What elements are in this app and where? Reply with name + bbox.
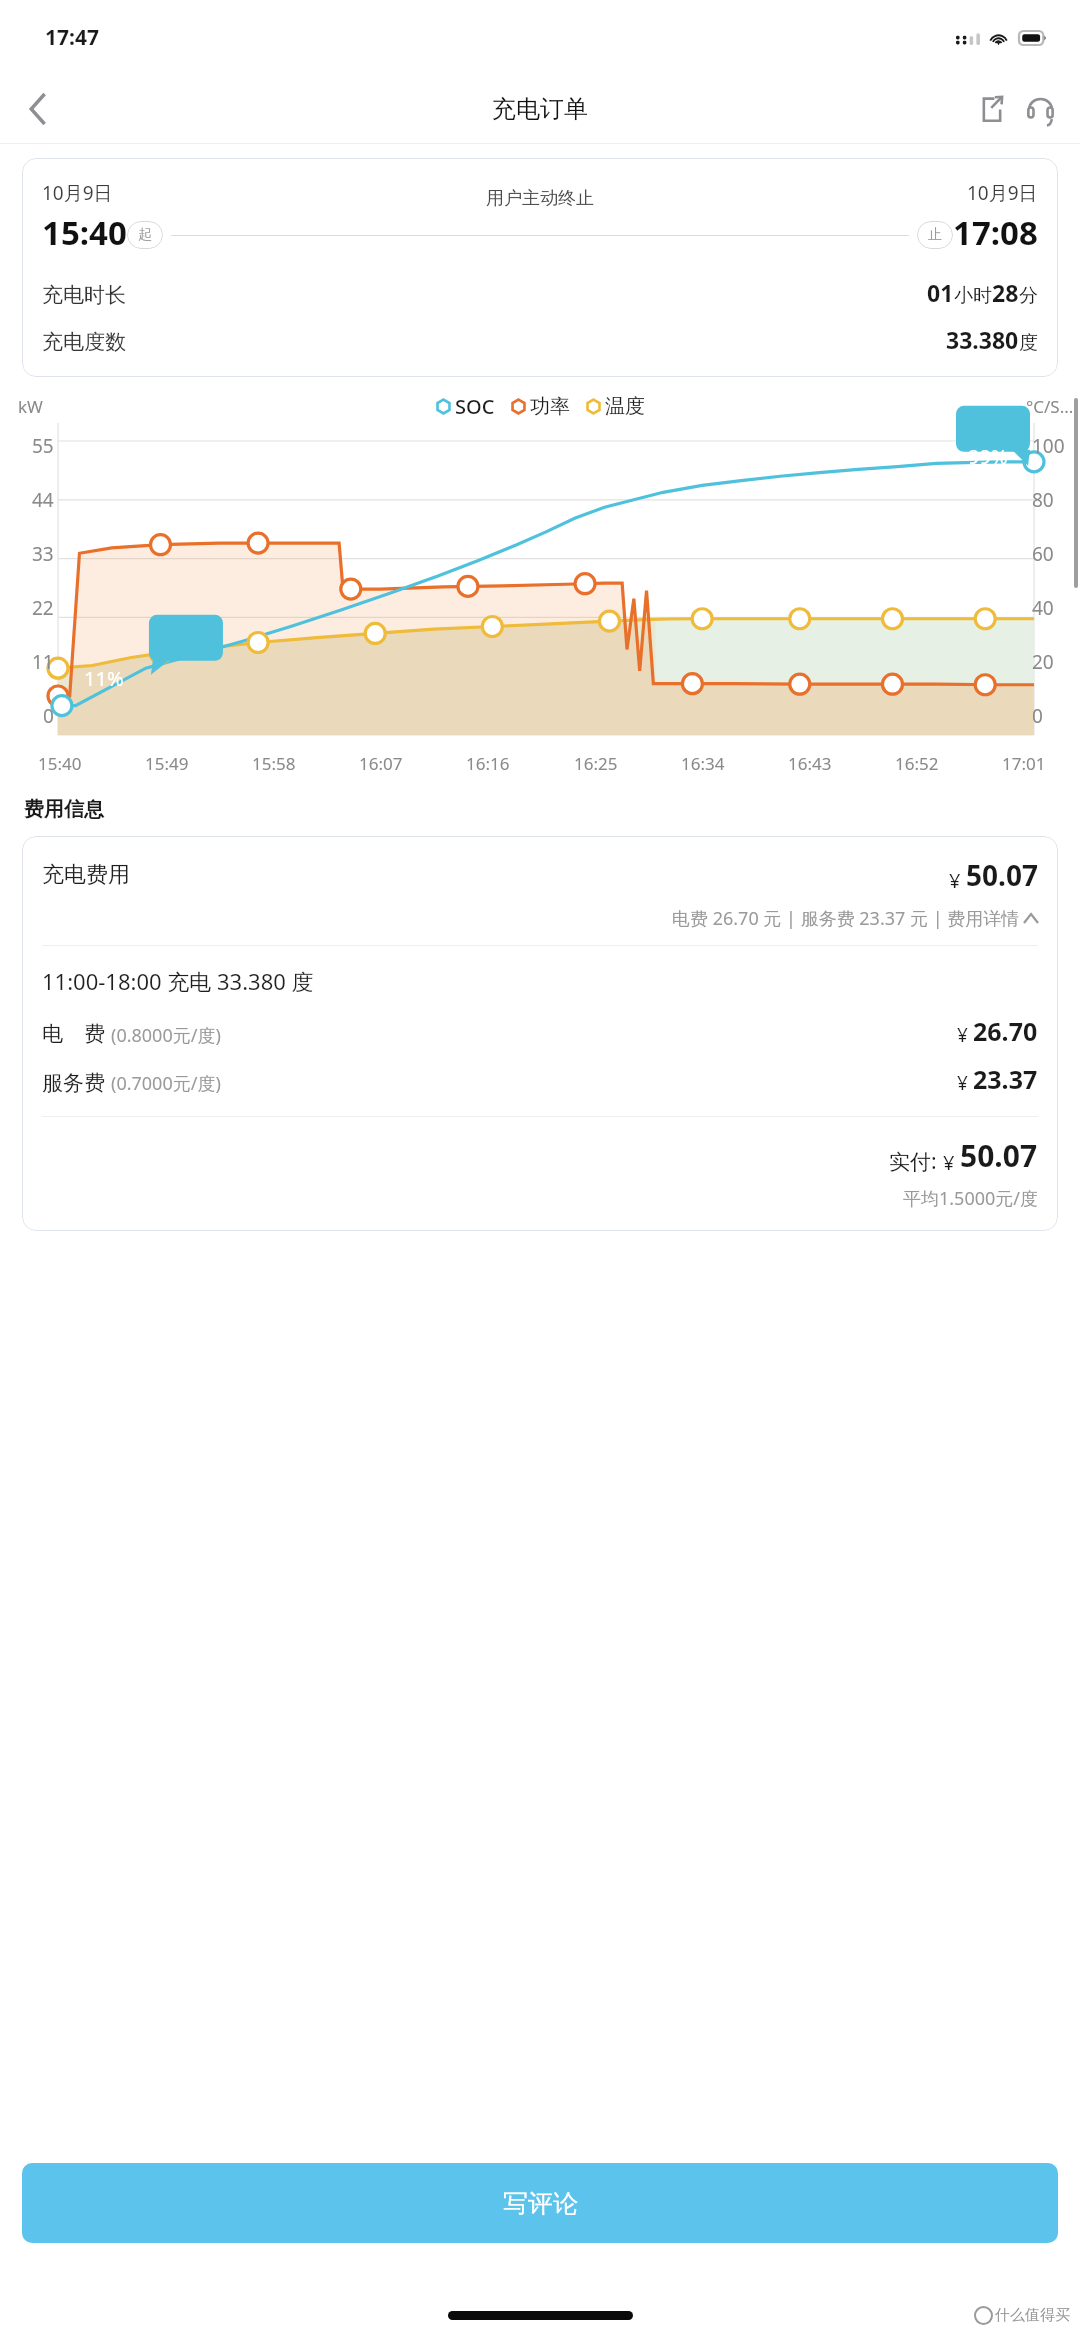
staticText: 功率 bbox=[530, 394, 570, 419]
staticText: (0.8000元/度) bbox=[111, 1023, 221, 1048]
staticText: 费用信息 bbox=[24, 797, 104, 822]
staticText: 16:52 bbox=[895, 752, 939, 775]
staticText: 17:47 bbox=[45, 23, 99, 52]
staticText: 10月9日 bbox=[967, 180, 1038, 206]
staticText: 0 bbox=[1032, 703, 1043, 729]
staticText: 16:25 bbox=[574, 752, 618, 775]
staticText: 服务费 bbox=[42, 1070, 105, 1096]
staticText: °C/S... bbox=[1026, 395, 1074, 418]
staticText: 什么值得买 bbox=[995, 2306, 1070, 2325]
staticText: 电费 26.70 元 | 服务费 23.37 元 | 费用详情 bbox=[672, 906, 1024, 931]
staticText: 11 bbox=[32, 649, 54, 675]
staticText: 充电费用 bbox=[42, 861, 130, 889]
staticText: ¥ bbox=[949, 867, 966, 894]
staticText: SOC bbox=[455, 393, 495, 420]
staticText: 22 bbox=[32, 595, 54, 621]
staticText: 01 bbox=[927, 277, 954, 308]
staticText: 充电度数 bbox=[42, 329, 126, 355]
staticText: 40 bbox=[1032, 595, 1054, 621]
staticText: (0.7000元/度) bbox=[111, 1071, 221, 1096]
staticText: 26.70 bbox=[973, 1014, 1038, 1048]
staticText: 16:34 bbox=[681, 752, 725, 775]
staticText: 11:00-18:00 充电 33.380 度 bbox=[42, 966, 314, 996]
staticText: 电 费 bbox=[42, 1019, 105, 1048]
staticText: 度 bbox=[1019, 331, 1038, 355]
staticText: 60 bbox=[1032, 541, 1054, 567]
button[interactable]: 10月9日 bbox=[22, 158, 1058, 377]
staticText: 50.07 bbox=[966, 856, 1038, 894]
staticText: 16:43 bbox=[788, 752, 832, 775]
staticText: 用户主动终止 bbox=[486, 187, 594, 210]
button[interactable]: 返回 bbox=[10, 81, 66, 137]
staticText: 充电时长 bbox=[42, 282, 126, 308]
staticText: 实付: bbox=[889, 1147, 943, 1176]
staticText: 15:40 bbox=[42, 210, 127, 255]
staticText: 15:58 bbox=[252, 752, 296, 775]
staticText: ¥ bbox=[957, 1022, 973, 1048]
staticText: 17:01 bbox=[1002, 752, 1046, 775]
staticText: 15:40 bbox=[38, 752, 82, 775]
staticText: 28 bbox=[992, 277, 1019, 308]
staticText: 0 bbox=[43, 703, 54, 729]
staticText: 止 bbox=[928, 226, 942, 244]
staticText: 44 bbox=[32, 487, 54, 513]
staticText: 温度 bbox=[605, 394, 645, 419]
staticText: 16:16 bbox=[466, 752, 510, 775]
staticText: 55 bbox=[32, 433, 54, 459]
staticText: 99% bbox=[968, 443, 1008, 470]
staticText: 23.37 bbox=[973, 1062, 1038, 1096]
staticText: 33.380 bbox=[946, 324, 1019, 355]
staticText: 100 bbox=[1032, 433, 1065, 459]
staticText: ¥ bbox=[943, 1149, 960, 1176]
staticText: 16:07 bbox=[359, 752, 403, 775]
staticText: ¥ bbox=[957, 1070, 973, 1096]
staticText: 50.07 bbox=[960, 1135, 1038, 1176]
staticText: kW bbox=[18, 395, 43, 418]
staticText: 分 bbox=[1019, 284, 1038, 308]
button[interactable]: 分享 bbox=[968, 85, 1016, 133]
staticText: 10月9日 bbox=[42, 180, 113, 206]
staticText: 80 bbox=[1032, 487, 1054, 513]
button[interactable]: 写评论 bbox=[22, 2163, 1058, 2243]
staticText: 充电订单 bbox=[492, 94, 588, 124]
staticText: 17:08 bbox=[953, 210, 1038, 255]
staticText: 小时 bbox=[954, 284, 992, 308]
staticText: 平均1.5000元/度 bbox=[903, 1186, 1038, 1211]
staticText: 15:49 bbox=[145, 752, 189, 775]
staticText: 写评论 bbox=[503, 2188, 578, 2219]
button[interactable]: 客服 bbox=[1016, 85, 1064, 133]
staticText: 20 bbox=[1032, 649, 1054, 675]
staticText: 起 bbox=[138, 226, 152, 244]
staticText: 33 bbox=[32, 541, 54, 567]
button[interactable]: 电费 26.70 元 | 服务费 23.37 元 | 费用详情 bbox=[42, 906, 1038, 931]
staticText: 11% bbox=[84, 665, 124, 692]
